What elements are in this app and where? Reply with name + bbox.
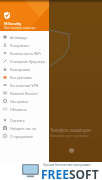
staticText: Блокировка приложений bbox=[10, 67, 49, 72]
button[interactable]: Настройки bbox=[0, 97, 49, 105]
button[interactable]: Безопасность WiFi bbox=[0, 49, 49, 57]
staticText: FREE bbox=[41, 166, 69, 180]
button[interactable]: Обновить bbox=[0, 105, 49, 113]
staticText: О программе bbox=[10, 134, 33, 139]
button[interactable]: Оценить bbox=[0, 116, 49, 124]
staticText: Телефон защищен bbox=[50, 127, 91, 133]
staticText: Лучшие бесплатные программы bbox=[43, 163, 91, 167]
button[interactable]: Ускоритель bbox=[0, 41, 49, 49]
staticText: Без рекламы bbox=[10, 75, 32, 80]
button[interactable]: Блокировка приложений bbox=[0, 65, 49, 73]
staticText: Безопасность WiFi bbox=[10, 51, 41, 56]
button[interactable]: Очищение браузера bbox=[0, 57, 49, 65]
staticText: Антивирус bbox=[10, 35, 28, 40]
staticText: Настройки bbox=[10, 99, 29, 104]
staticText: Оценить bbox=[10, 118, 25, 123]
staticText: Ускоритель bbox=[10, 43, 30, 48]
other: Scan bbox=[69, 148, 74, 153]
button[interactable]: Без рекламы bbox=[0, 73, 49, 81]
staticText: Нажмите для проверки bbox=[50, 133, 89, 138]
staticText: Network Booster bbox=[10, 91, 38, 96]
button[interactable]: О программе bbox=[0, 132, 49, 140]
staticText: Hi Security bbox=[4, 21, 21, 26]
staticText: Ваш телефон защищен bbox=[4, 26, 36, 30]
other: Hi Security bbox=[4, 12, 10, 19]
button[interactable]: Найдите нас на Facebook bbox=[0, 124, 49, 132]
staticText: Бесплатный VPN bbox=[10, 83, 39, 88]
staticText: Очищение браузера bbox=[10, 59, 45, 64]
staticText: Найдите нас на Facebook bbox=[10, 126, 49, 131]
staticText: SOFT bbox=[69, 166, 99, 180]
staticText: Обновить bbox=[10, 107, 27, 112]
button[interactable]: Network Booster bbox=[0, 89, 49, 97]
button[interactable]: Антивирус bbox=[0, 33, 49, 41]
button[interactable]: Бесплатный VPN bbox=[0, 81, 49, 89]
